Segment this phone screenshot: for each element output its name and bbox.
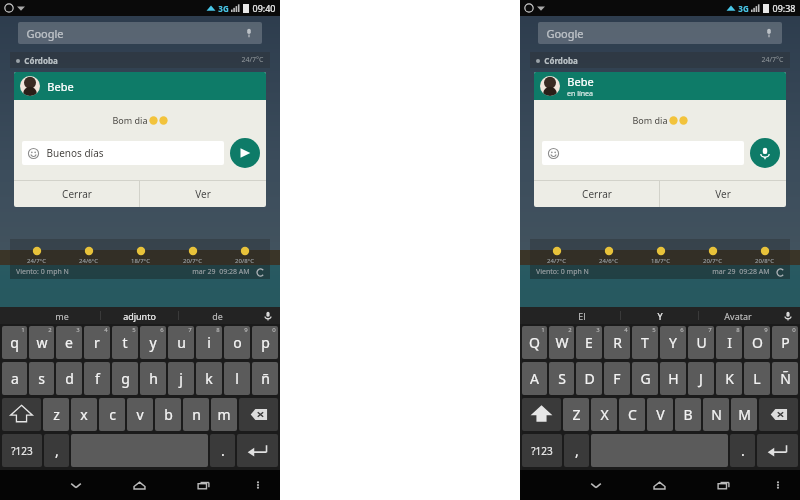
button[interactable]: w (29, 326, 54, 359)
button[interactable]: m (211, 398, 237, 431)
button[interactable]: Google (538, 22, 782, 44)
button[interactable]: Ver (140, 181, 266, 207)
button[interactable]: adjunto (101, 307, 178, 324)
button[interactable]: W (549, 326, 574, 359)
button[interactable]: Z (563, 398, 589, 431)
button[interactable]: r (84, 326, 110, 359)
button[interactable]: Bebe (20, 72, 260, 100)
button[interactable]: Enter (237, 434, 278, 467)
button[interactable]: Ñ (772, 362, 798, 395)
button[interactable]: de (179, 307, 256, 324)
button[interactable]: More options (755, 470, 800, 500)
button[interactable]: g (112, 362, 138, 395)
button[interactable]: j (168, 362, 194, 395)
button[interactable]: Q (522, 326, 547, 359)
button[interactable]: Bebe (540, 72, 780, 100)
button[interactable]: Cerrar (14, 181, 139, 207)
button[interactable]: Home (107, 470, 171, 500)
button[interactable]: Shift (522, 398, 561, 431)
button[interactable]: s (29, 362, 54, 395)
button[interactable]: , (44, 434, 69, 467)
button[interactable]: Recents (691, 470, 755, 500)
button[interactable]: G (632, 362, 658, 395)
button[interactable]: v (127, 398, 153, 431)
button[interactable]: K (716, 362, 742, 395)
staticText: Y (669, 333, 677, 352)
button[interactable]: me (24, 307, 100, 324)
button[interactable]: T (632, 326, 658, 359)
button[interactable]: p (252, 326, 278, 359)
button[interactable]: Google (18, 22, 262, 44)
button[interactable]: S (549, 362, 574, 395)
button[interactable]: z (43, 398, 69, 431)
button[interactable]: J (688, 362, 714, 395)
button[interactable]: Backspace (239, 398, 278, 431)
button[interactable]: y (140, 326, 166, 359)
button[interactable]: V (647, 398, 673, 431)
button[interactable]: N (703, 398, 729, 431)
button[interactable]: e (56, 326, 82, 359)
button[interactable]: a (2, 362, 27, 395)
button[interactable]: d (56, 362, 82, 395)
button[interactable]: I (716, 326, 742, 359)
button[interactable]: t (112, 326, 138, 359)
button[interactable] (548, 141, 738, 165)
button[interactable]: B (675, 398, 701, 431)
button[interactable]: E (576, 326, 602, 359)
button[interactable]: Voice input (256, 307, 280, 324)
button[interactable]: h (140, 362, 166, 395)
button[interactable]: f (84, 362, 110, 395)
button[interactable]: C (619, 398, 645, 431)
button[interactable]: . (730, 434, 755, 467)
button[interactable]: D (576, 362, 602, 395)
button[interactable]: Voice input (776, 307, 800, 324)
staticText: Z (572, 405, 581, 424)
button[interactable]: More options (235, 470, 280, 500)
button[interactable]: X (591, 398, 617, 431)
button[interactable]: O (744, 326, 770, 359)
button[interactable]: L (744, 362, 770, 395)
button[interactable]: Buenos días (28, 141, 218, 165)
button[interactable]: F (604, 362, 630, 395)
button[interactable]: H (660, 362, 686, 395)
button[interactable]: b (155, 398, 181, 431)
button[interactable]: Send (230, 138, 260, 168)
button[interactable]: M (731, 398, 757, 431)
button[interactable]: q (2, 326, 27, 359)
button[interactable]: n (183, 398, 209, 431)
button[interactable]: Enter (757, 434, 798, 467)
button[interactable]: Y (621, 307, 698, 324)
button[interactable]: c (99, 398, 125, 431)
button[interactable]: . (210, 434, 235, 467)
button[interactable]: Voice message (750, 138, 780, 168)
button[interactable]: k (196, 362, 222, 395)
button[interactable]: U (688, 326, 714, 359)
button[interactable]: i (196, 326, 222, 359)
button[interactable]: Home (627, 470, 691, 500)
button[interactable]: ñ (252, 362, 278, 395)
button[interactable]: ?123 (2, 434, 42, 467)
button[interactable]: A (522, 362, 547, 395)
button[interactable]: P (772, 326, 798, 359)
button[interactable]: o (224, 326, 250, 359)
button[interactable]: Hide keyboard (44, 470, 107, 500)
button[interactable]: ?123 (522, 434, 562, 467)
button[interactable]: Shift (2, 398, 41, 431)
staticText: 1 (21, 326, 25, 334)
button[interactable]: Backspace (759, 398, 798, 431)
button[interactable]: Y (660, 326, 686, 359)
button[interactable]: Hide keyboard (564, 470, 627, 500)
button[interactable]: R (604, 326, 630, 359)
button[interactable]: Cerrar (534, 181, 659, 207)
button[interactable]: , (564, 434, 589, 467)
button[interactable]: l (224, 362, 250, 395)
button[interactable]: Ver (660, 181, 786, 207)
staticText: 09:38 (772, 2, 796, 14)
button[interactable]: El (544, 307, 620, 324)
button[interactable]: u (168, 326, 194, 359)
button[interactable]: Recents (171, 470, 235, 500)
button[interactable]: Avatar (699, 307, 776, 324)
button[interactable]: x (71, 398, 97, 431)
